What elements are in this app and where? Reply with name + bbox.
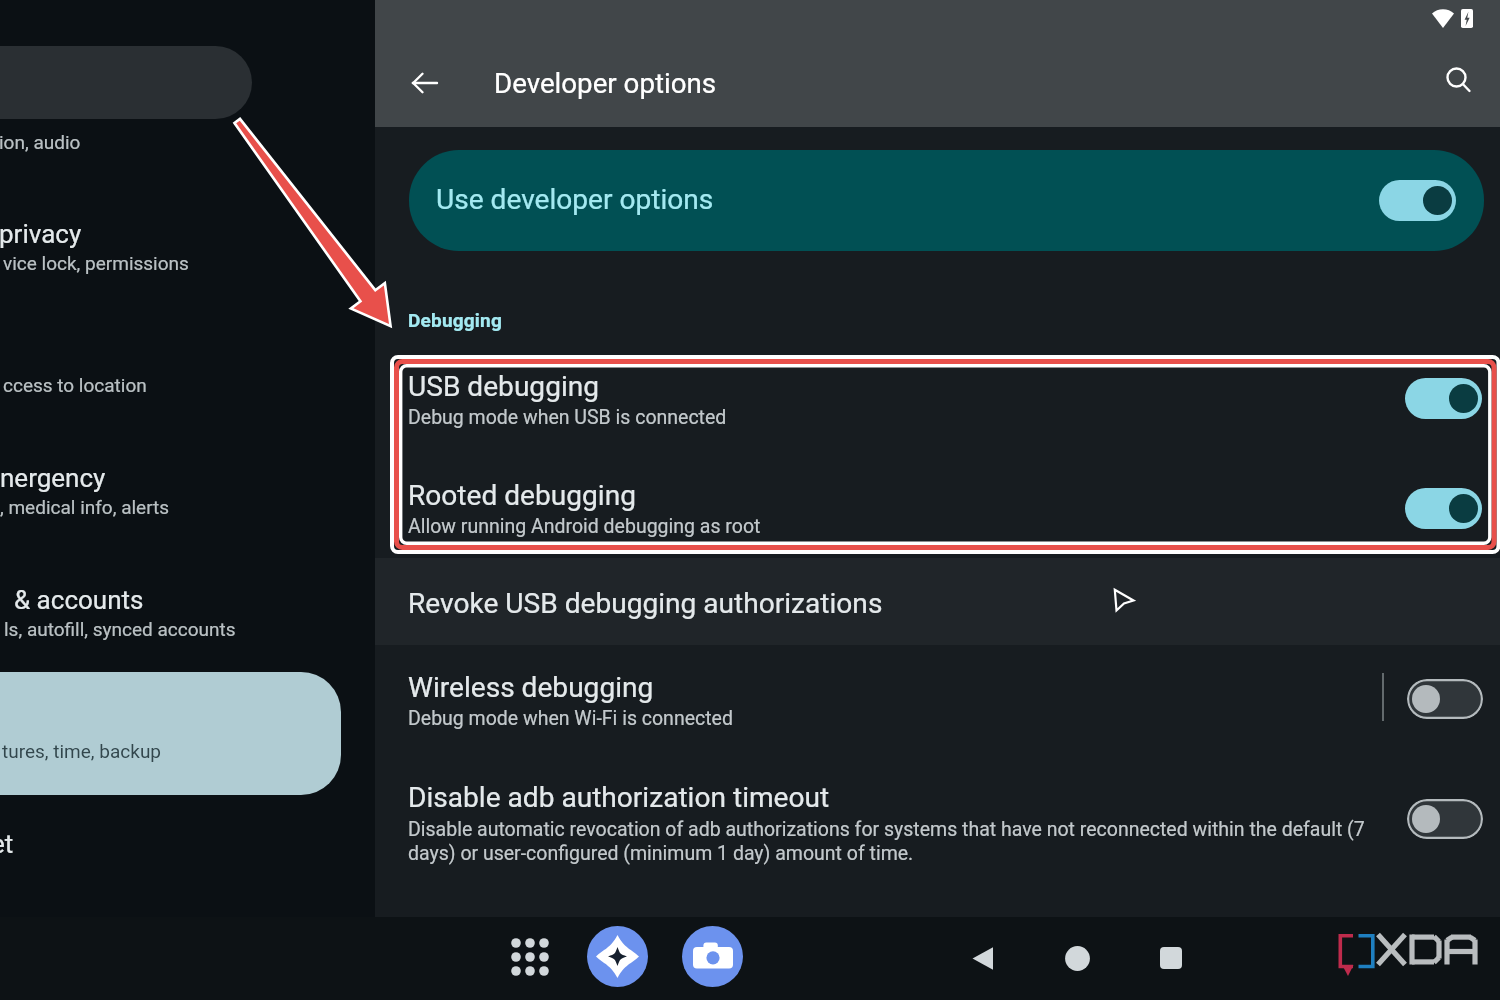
button[interactable]: Toggle on [1405, 378, 1482, 419]
button[interactable]: Camera [682, 926, 743, 987]
staticText: Revoke USB debugging authorizations [408, 587, 883, 620]
button[interactable] [0, 0, 374, 1000]
button[interactable]: Back [958, 934, 1006, 982]
button[interactable]: Home [1053, 934, 1101, 982]
staticText: Developer options [494, 67, 717, 99]
button[interactable]: & accounts [14, 585, 144, 615]
button[interactable]: Disable adb authorization timeout [375, 762, 1500, 880]
button[interactable]: Toggle off [1407, 679, 1483, 719]
button[interactable]: Wireless debugging [375, 645, 1500, 745]
button[interactable]: nergency [0, 463, 106, 493]
button[interactable]: Search [1434, 56, 1482, 104]
staticText: Use developer options [436, 183, 714, 216]
button[interactable]: tures, time, backup [2, 740, 162, 762]
button[interactable]: ion, audio [0, 131, 81, 153]
button[interactable]: Revoke USB debugging authorizations [375, 558, 1500, 645]
staticText: Disable adb authorization timeout [408, 781, 830, 814]
button[interactable]: vice lock, permissions [3, 252, 189, 274]
staticText: Debugging [408, 309, 503, 331]
button[interactable]: ls, autofill, synced accounts [4, 618, 236, 640]
staticText: Rooted debugging [408, 479, 636, 512]
button[interactable]: Gemini [587, 926, 648, 987]
button[interactable]: ccess to location [3, 374, 147, 396]
staticText: Disable automatic revocation of adb auth… [408, 818, 1383, 864]
button[interactable]: , medical info, alerts [0, 496, 170, 518]
button[interactable]: Toggle on [1379, 180, 1456, 221]
button[interactable]: et [0, 829, 14, 859]
button[interactable]: privacy [0, 219, 82, 249]
button[interactable]: Recent apps [1147, 934, 1195, 982]
button[interactable]: Toggle on [1405, 488, 1482, 529]
staticText: Debug mode when USB is connected [408, 406, 727, 429]
staticText: Allow running Android debugging as root [408, 515, 761, 538]
button[interactable]: Use developer options [409, 150, 1484, 251]
button[interactable]: USB debugging [375, 367, 1500, 476]
button[interactable]: Toggle off [1407, 799, 1483, 839]
button[interactable]: Back [400, 59, 448, 107]
staticText: USB debugging [408, 370, 600, 403]
button[interactable]: All apps [506, 933, 554, 981]
staticText: Wireless debugging [408, 671, 654, 704]
staticText: Debug mode when Wi-Fi is connected [408, 707, 733, 730]
button[interactable]: Rooted debugging [375, 476, 1500, 554]
